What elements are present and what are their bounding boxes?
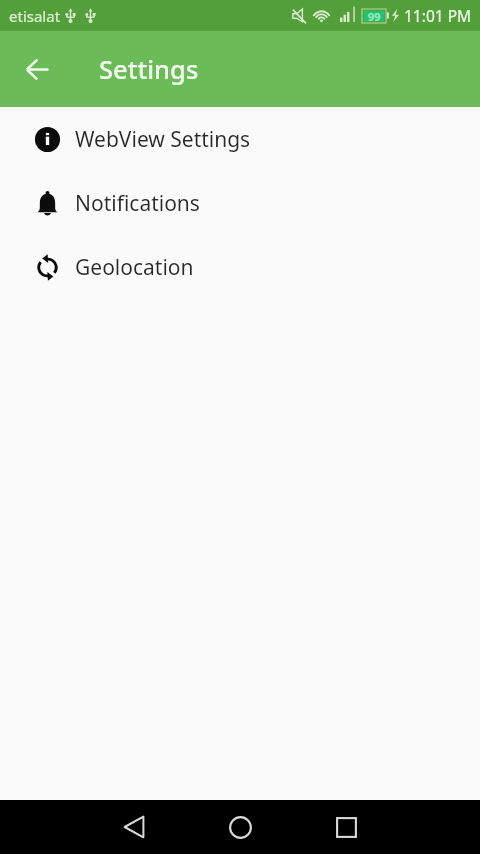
staticText: 11:01 PM bbox=[404, 5, 472, 26]
staticText: Geolocation bbox=[75, 253, 194, 282]
staticText: WebView Settings bbox=[75, 125, 251, 154]
button[interactable]: WebView Settings bbox=[0, 107, 480, 171]
staticText: Settings bbox=[99, 52, 199, 87]
button[interactable]: Geolocation bbox=[0, 235, 480, 299]
staticText: 99 bbox=[368, 9, 381, 23]
staticText: etisalat bbox=[9, 6, 61, 26]
button[interactable]: Notifications bbox=[0, 171, 480, 235]
staticText: Notifications bbox=[75, 189, 200, 218]
button[interactable]: Home bbox=[216, 803, 264, 851]
button[interactable]: Navigate up bbox=[13, 45, 61, 93]
button[interactable]: Back bbox=[110, 803, 158, 851]
button[interactable]: Recent apps bbox=[322, 803, 370, 851]
